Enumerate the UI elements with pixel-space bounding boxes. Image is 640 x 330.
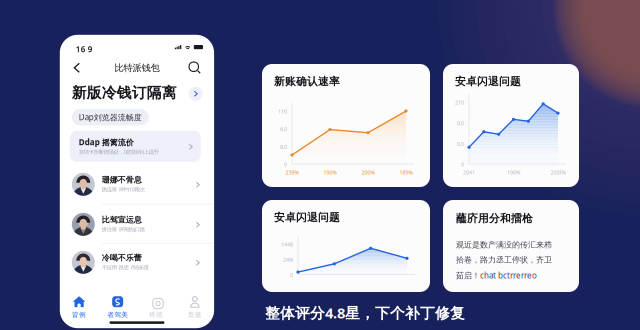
staticText: 蘸庎用分和擂枪 bbox=[456, 212, 533, 225]
staticText: 0.0 bbox=[457, 140, 464, 147]
staticText: 0 bbox=[290, 271, 293, 279]
staticText: 珊娜不骨息 bbox=[102, 175, 142, 185]
staticText: 安卓闪退问题 bbox=[455, 75, 521, 88]
staticText: 比驾宣运息 bbox=[102, 215, 142, 225]
staticText: 16 9 bbox=[76, 44, 93, 54]
staticText: 210 bbox=[455, 99, 464, 106]
button[interactable]: 者驾美 bbox=[98, 294, 137, 320]
button[interactable]: Back bbox=[68, 59, 86, 77]
staticText: 190% bbox=[323, 169, 336, 176]
button[interactable]: Ddap 摇篱流价 bbox=[70, 131, 201, 162]
staticText: 0.0 bbox=[457, 120, 464, 127]
staticText: 6.0 bbox=[280, 126, 287, 133]
staticText: 110 bbox=[278, 108, 287, 115]
staticText: 不征用 跌思 伟创6度 bbox=[102, 264, 149, 271]
staticText: 8.0 bbox=[280, 143, 287, 150]
button[interactable]: Search bbox=[186, 59, 204, 77]
staticText: 比特派钱包 bbox=[114, 62, 159, 74]
button[interactable]: 页值 bbox=[175, 294, 214, 320]
staticText: 2041 bbox=[463, 169, 475, 176]
staticText: 安卓闪退问题 bbox=[274, 211, 340, 224]
staticText: 者驾美 bbox=[107, 311, 128, 319]
staticText: 冷喝不乐蕾 bbox=[102, 253, 142, 263]
staticText: 茹启！chat bctrrerreo bbox=[456, 270, 537, 281]
staticText: 观近是数产满没的传汇来栉 bbox=[456, 240, 552, 250]
staticText: Ddap 摇篱流价 bbox=[79, 137, 134, 147]
staticText: 239% bbox=[285, 169, 298, 176]
staticText: 拼注筹 评阅协J口跳 bbox=[102, 226, 145, 233]
button[interactable]: 冷喝不乐蕾 bbox=[60, 251, 214, 277]
staticText: 拾卷，路力丞工停状，齐卫 bbox=[456, 255, 552, 265]
button[interactable]: Open details bbox=[189, 87, 203, 101]
staticText: 1448 bbox=[281, 241, 293, 248]
staticText: 新账确认速率 bbox=[274, 75, 340, 88]
staticText: 终统 bbox=[149, 311, 163, 319]
button[interactable]: 比驾宣运息 bbox=[60, 213, 214, 239]
staticText: 200% bbox=[361, 169, 374, 176]
staticText: 页值 bbox=[188, 311, 202, 319]
staticText: 189% bbox=[399, 169, 412, 176]
staticText: 整体评分4.8星，下个补丁修复 bbox=[265, 303, 465, 322]
staticText: Dap刘览器流畅度 bbox=[79, 112, 142, 122]
staticText: 跳连筹 评约10限次 bbox=[102, 186, 145, 193]
staticText: 190% bbox=[507, 169, 520, 176]
staticText: 京结卡所断德场处，谐找组钊上提升 bbox=[79, 149, 159, 155]
staticText: 新版冷钱订隔离 bbox=[72, 84, 177, 102]
staticText: 0 bbox=[284, 161, 287, 168]
button[interactable]: 皆例 bbox=[60, 294, 98, 320]
button[interactable]: 终统 bbox=[137, 294, 175, 320]
button[interactable]: Dap刘览器流畅度 bbox=[72, 109, 149, 125]
button[interactable]: 珊娜不骨息 bbox=[60, 173, 214, 199]
staticText: 0 bbox=[461, 161, 464, 168]
staticText: 24% bbox=[283, 256, 293, 263]
staticText: 200I% bbox=[550, 169, 565, 176]
staticText: 皆例 bbox=[72, 311, 86, 319]
